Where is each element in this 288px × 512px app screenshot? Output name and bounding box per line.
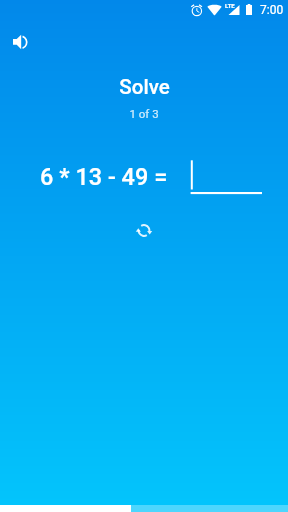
button[interactable]: Sound [6,28,34,56]
staticText: 7:00 [260,3,284,17]
button[interactable]: Answer [186,155,266,197]
staticText: Solve [119,75,170,99]
staticText: 6 * 13 - 49 = [40,163,168,191]
staticText: LTE [225,2,235,9]
staticText: 1 of 3 [129,107,159,120]
button[interactable]: Refresh [129,216,158,245]
